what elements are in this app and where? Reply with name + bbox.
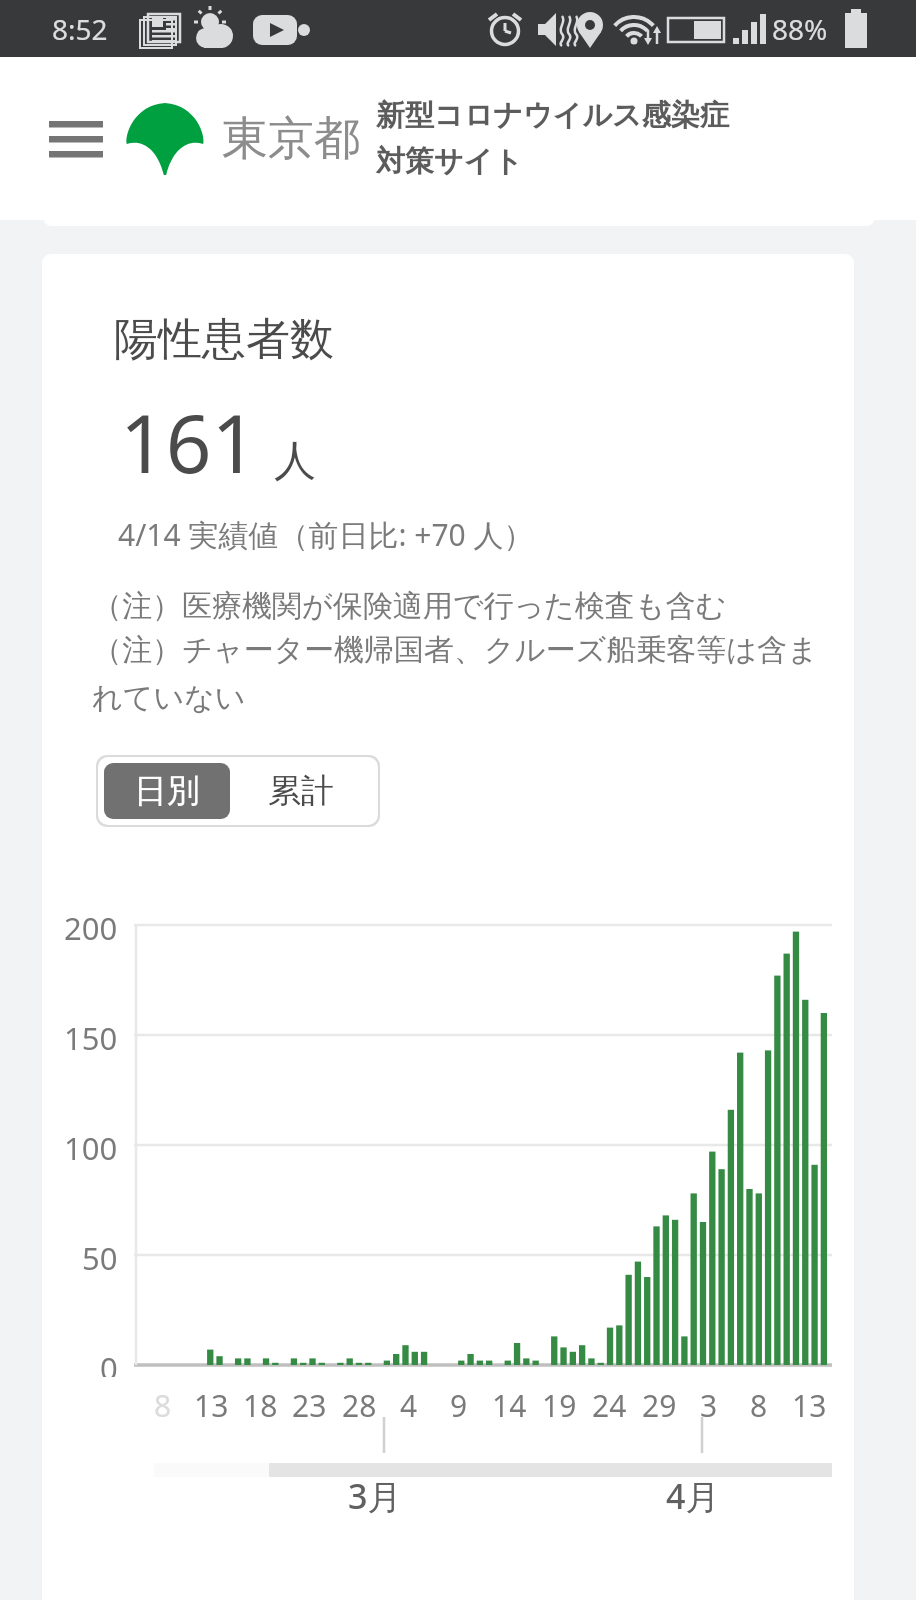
staticText: 29 [642, 1385, 677, 1426]
staticText: 13 [194, 1385, 229, 1426]
staticText: 50 [82, 1237, 118, 1279]
staticText: 4 [400, 1385, 418, 1426]
staticText: 東京都 [222, 110, 360, 168]
staticText: 18 [243, 1385, 278, 1426]
staticText: 100 [64, 1127, 118, 1169]
staticText: 累計 [268, 770, 334, 812]
staticText: 28 [342, 1385, 377, 1426]
staticText: 8 [750, 1385, 768, 1426]
staticText: 陽性患者数 [114, 312, 334, 367]
staticText: （注）チャーター機帰国者、クルーズ船乗客等は含まれていない [92, 631, 830, 717]
staticText: 13 [792, 1385, 827, 1426]
staticText: 新型コロナウイルス感染症 対策サイト [376, 97, 729, 180]
button[interactable]: Menu [48, 115, 104, 163]
button[interactable]: 累計 [230, 763, 372, 819]
staticText: 23 [292, 1385, 327, 1426]
staticText: 8:52 [52, 10, 108, 48]
button[interactable]: 日別 [104, 763, 230, 819]
staticText: 3 [700, 1385, 718, 1426]
staticText: 4/14 実績値（前日比: +70 人） [118, 514, 534, 555]
staticText: 3月 [348, 1473, 402, 1519]
staticText: 19 [542, 1385, 577, 1426]
staticText: 200 [64, 907, 118, 949]
staticText: 24 [592, 1385, 627, 1426]
staticText: 0 [100, 1347, 118, 1377]
staticText: 8 [154, 1385, 172, 1426]
staticText: 150 [64, 1017, 118, 1059]
staticText: 9 [450, 1385, 468, 1426]
staticText: 4月 [666, 1473, 720, 1519]
staticText: 14 [492, 1385, 527, 1426]
staticText: （注）医療機関が保険適用で行った検査も含む [92, 587, 727, 625]
staticText: 人 [274, 435, 316, 488]
staticText: 日別 [134, 770, 200, 812]
staticText: 161 [120, 387, 258, 496]
staticText: 88% [772, 10, 828, 48]
